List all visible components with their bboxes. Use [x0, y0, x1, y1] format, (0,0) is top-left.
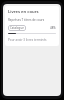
staticText: 48%	[50, 26, 56, 30]
staticText: Pour avoir 3 livres terminés	[8, 38, 47, 42]
button[interactable]: Catalogue	[8, 25, 26, 31]
staticText: Reprèses 7 titres de cours	[8, 18, 45, 22]
staticText: Catalogue	[10, 26, 24, 30]
staticText: Livres en cours	[8, 9, 39, 15]
button[interactable]: Livres en cours	[5, 6, 59, 46]
